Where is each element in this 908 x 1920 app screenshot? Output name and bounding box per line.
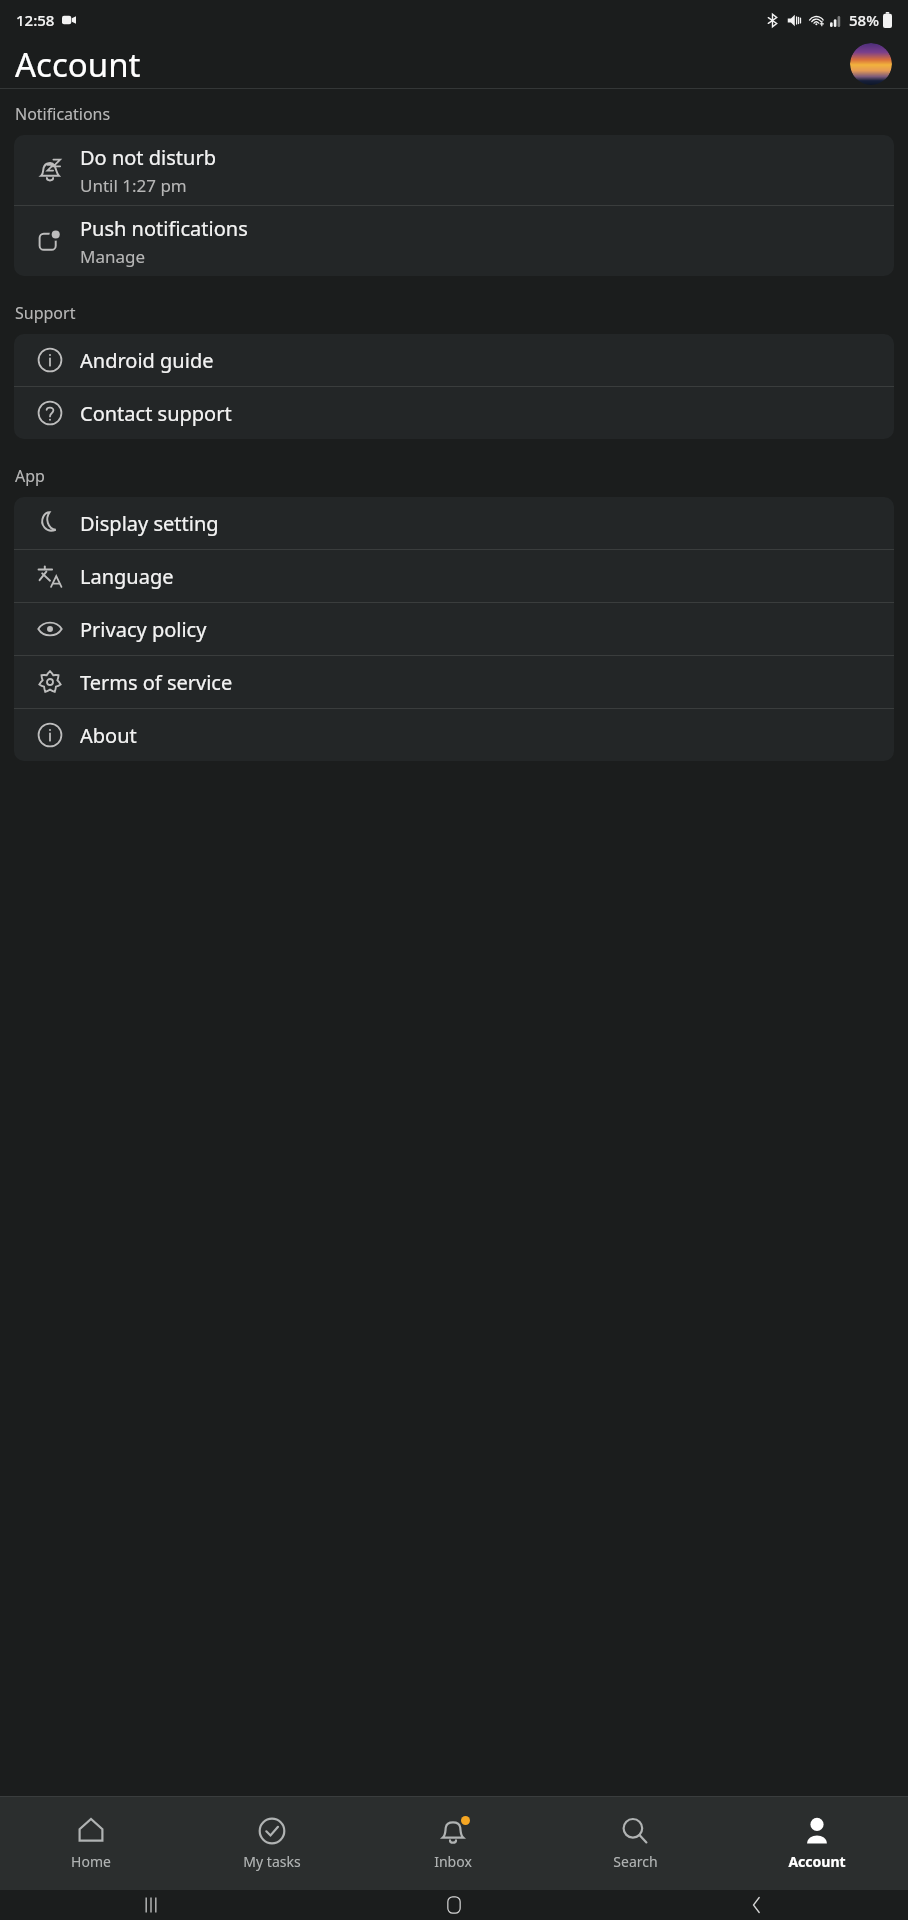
staticText: Android guide bbox=[80, 347, 214, 374]
button[interactable]: Search bbox=[544, 1797, 726, 1890]
button[interactable]: Push notifications bbox=[14, 206, 894, 276]
button[interactable]: Language bbox=[14, 550, 894, 602]
staticText: 58% bbox=[849, 10, 879, 30]
button[interactable]: Account bbox=[726, 1797, 908, 1890]
staticText: Search bbox=[613, 1852, 658, 1871]
staticText: About bbox=[80, 722, 137, 749]
button[interactable]: Display setting bbox=[14, 497, 894, 549]
button[interactable]: Inbox bbox=[362, 1797, 544, 1890]
staticText: Terms of service bbox=[80, 669, 233, 696]
button[interactable]: About bbox=[14, 709, 894, 761]
button[interactable]: Android guide bbox=[14, 334, 894, 386]
staticText: Until 1:27 pm bbox=[80, 174, 187, 197]
button[interactable]: Do not disturb bbox=[14, 135, 894, 205]
staticText: Account bbox=[15, 42, 141, 87]
button[interactable]: My tasks bbox=[181, 1797, 362, 1890]
button[interactable]: Profile bbox=[850, 43, 892, 85]
staticText: Privacy policy bbox=[80, 616, 207, 643]
staticText: Account bbox=[788, 1852, 846, 1871]
staticText: Home bbox=[71, 1852, 111, 1871]
staticText: Inbox bbox=[434, 1852, 472, 1871]
staticText: Support bbox=[15, 302, 76, 324]
staticText: Language bbox=[80, 563, 174, 590]
staticText: Do not disturb bbox=[80, 144, 216, 171]
staticText: App bbox=[15, 465, 45, 487]
button[interactable]: Terms of service bbox=[14, 656, 894, 708]
staticText: 12:58 bbox=[16, 10, 55, 30]
button[interactable]: Privacy policy bbox=[14, 603, 894, 655]
staticText: My tasks bbox=[243, 1852, 301, 1871]
button[interactable]: Contact support bbox=[14, 387, 894, 439]
staticText: Manage bbox=[80, 245, 146, 268]
staticText: Display setting bbox=[80, 510, 219, 537]
staticText: Notifications bbox=[15, 103, 111, 125]
button[interactable]: Home bbox=[0, 1797, 181, 1890]
staticText: Contact support bbox=[80, 400, 232, 427]
staticText: Push notifications bbox=[80, 215, 248, 242]
